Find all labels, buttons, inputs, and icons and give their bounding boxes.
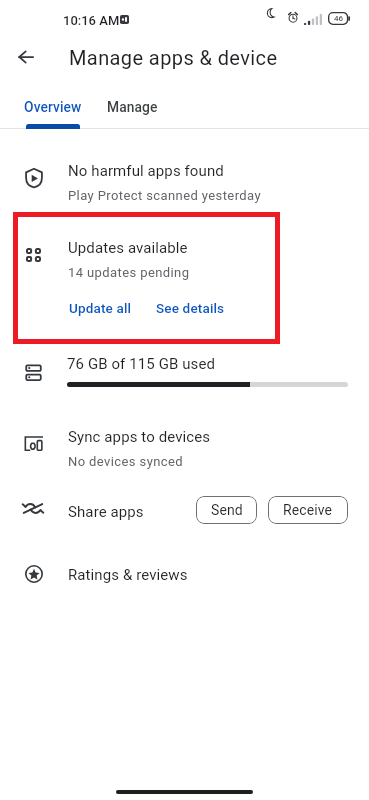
button[interactable]: Updates available: [0, 229, 369, 279]
button[interactable]: Overview: [11, 87, 95, 127]
button[interactable]: Receive: [268, 496, 348, 524]
button[interactable]: Send: [196, 496, 257, 524]
button[interactable]: Update all: [60, 293, 141, 323]
button[interactable]: No harmful apps found: [0, 151, 369, 208]
staticText: Share apps: [68, 503, 144, 521]
staticText: Overview: [24, 99, 82, 115]
button[interactable]: See details: [147, 293, 234, 323]
button[interactable]: [0, 488, 369, 532]
staticText: See details: [156, 300, 225, 316]
staticText: Updates available: [68, 239, 188, 257]
staticText: Send: [211, 502, 243, 518]
button[interactable]: 76 GB of 115 GB used: [0, 348, 369, 398]
button[interactable]: Ratings & reviews: [0, 552, 369, 596]
staticText: 76 GB of 115 GB used: [67, 355, 216, 373]
staticText: Manage: [107, 99, 158, 115]
staticText: Manage apps & device: [69, 46, 278, 69]
staticText: 10:16 AM: [63, 13, 120, 28]
button[interactable]: Manage: [96, 87, 168, 127]
staticText: Sync apps to devices: [68, 428, 211, 446]
staticText: 14 updates pending: [68, 265, 190, 280]
button[interactable]: Sync apps to devices: [0, 418, 369, 475]
button[interactable]: Back: [6, 37, 46, 77]
staticText: Play Protect scanned yesterday: [68, 188, 261, 203]
staticText: No harmful apps found: [68, 162, 224, 180]
staticText: Update all: [69, 300, 132, 316]
staticText: Ratings & reviews: [68, 566, 188, 584]
staticText: Receive: [283, 502, 333, 518]
staticText: No devices synced: [68, 454, 184, 469]
staticText: 46: [334, 14, 344, 23]
